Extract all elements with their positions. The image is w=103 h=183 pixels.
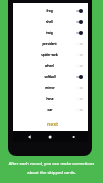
staticText: oar — [47, 108, 53, 112]
button[interactable]: hose — [13, 93, 88, 104]
staticText: president — [42, 42, 57, 46]
staticText: frog — [46, 9, 53, 13]
staticText: hose — [46, 97, 54, 101]
staticText: oar — [47, 108, 53, 112]
staticText: twig — [46, 31, 53, 35]
button[interactable]: twig — [13, 27, 88, 38]
staticText: shell — [46, 20, 53, 24]
staticText: president — [42, 42, 57, 46]
staticText: softball — [44, 75, 56, 79]
button[interactable]: spider web — [13, 49, 88, 60]
staticText: shell — [46, 20, 53, 24]
staticText: shell — [46, 20, 53, 24]
staticText: spider web — [41, 53, 58, 57]
staticText: mirror — [45, 86, 55, 90]
staticText: softball — [44, 75, 56, 79]
staticText: mirror — [45, 86, 55, 90]
staticText: president — [42, 42, 57, 46]
staticText: oar — [47, 108, 53, 112]
button[interactable]: president — [13, 38, 88, 49]
staticText: twig — [46, 31, 53, 35]
staticText: wheel — [45, 64, 54, 68]
button[interactable]: shell — [13, 16, 88, 27]
staticText: wheel — [45, 64, 54, 68]
staticText: spider web — [41, 53, 58, 57]
staticText: After each round, you can make correctio… — [4, 161, 99, 175]
staticText: hose — [46, 97, 54, 101]
staticText: frog — [46, 9, 53, 13]
staticText: twig — [46, 31, 53, 35]
staticText: hose — [46, 97, 54, 101]
staticText: spider web — [41, 53, 58, 57]
staticText: softball — [44, 75, 56, 79]
button[interactable]: wheel — [13, 60, 88, 71]
button[interactable]: oar — [13, 104, 88, 115]
staticText: wheel — [45, 64, 54, 68]
staticText: next — [47, 121, 59, 128]
staticText: mirror — [45, 86, 55, 90]
button[interactable]: next — [13, 120, 88, 128]
button[interactable]: frog — [13, 5, 88, 16]
button[interactable]: softball — [13, 71, 88, 82]
staticText: frog — [46, 9, 53, 13]
button[interactable]: mirror — [13, 82, 88, 93]
